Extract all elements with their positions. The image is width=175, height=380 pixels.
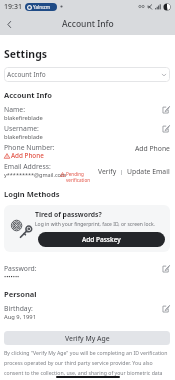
staticText: Tired of passwords? (35, 210, 102, 219)
staticText: Verify My Age (65, 334, 110, 343)
button[interactable]: Update Email (127, 167, 170, 176)
staticText: | (117, 168, 127, 176)
staticText: Log in with your fingerprint, face ID, o… (35, 221, 155, 228)
button[interactable]: Edit (162, 106, 170, 114)
button[interactable]: Add Phone (135, 144, 170, 153)
button[interactable]: Edit (162, 305, 170, 313)
staticText: Phone Number: (4, 143, 55, 152)
staticText: Username: (4, 124, 39, 133)
staticText: Add Phone (11, 151, 44, 160)
staticText: Login Methods (4, 189, 60, 199)
button[interactable]: Verify (98, 167, 117, 176)
staticText: 19:31 (4, 2, 22, 12)
staticText: blakefireblade (4, 133, 43, 141)
staticText: Aug 9, 1991 (4, 313, 36, 321)
button[interactable]: Add Passkey (38, 232, 165, 247)
staticText: Password: (4, 264, 37, 273)
staticText: blakefireblade (4, 114, 43, 122)
staticText: Account Info (4, 90, 52, 100)
button[interactable]: Edit (162, 125, 170, 133)
staticText: Add Passkey (82, 235, 121, 244)
staticText: Name: (4, 105, 25, 114)
staticText: y*********@gmail.com (4, 171, 67, 178)
button[interactable]: Account Info (4, 67, 170, 82)
staticText: Account Info (62, 18, 114, 30)
staticText: Personal (4, 289, 37, 299)
staticText: ••••••• (4, 273, 20, 281)
button[interactable]: Add Phone (4, 151, 44, 160)
staticText: Pending (66, 171, 84, 177)
staticText: Email Address: (4, 162, 51, 171)
staticText: verification (66, 177, 91, 183)
staticText: Yalnızm (33, 4, 50, 10)
button[interactable]: Edit (162, 265, 170, 273)
staticText: Account Info (7, 70, 46, 79)
button[interactable]: Back (1, 16, 17, 32)
staticText: Settings (4, 47, 48, 61)
button[interactable]: Verify My Age (4, 331, 170, 345)
staticText: By clicking "Verify My Age" you will be … (4, 349, 170, 376)
staticText: Birthday: (4, 304, 33, 313)
